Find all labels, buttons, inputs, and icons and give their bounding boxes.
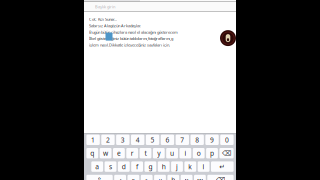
button[interactable]: x bbox=[127, 175, 139, 180]
button[interactable]: f bbox=[131, 161, 143, 172]
staticText: ⌫ bbox=[216, 176, 225, 180]
button[interactable]: b bbox=[167, 175, 179, 180]
button[interactable]: e bbox=[113, 148, 125, 158]
staticText: p bbox=[210, 149, 214, 158]
button[interactable]: c bbox=[141, 175, 153, 180]
button[interactable]: v bbox=[154, 175, 166, 180]
button[interactable]: 6 bbox=[161, 135, 174, 145]
staticText: 1 bbox=[91, 135, 95, 144]
staticText: m bbox=[197, 176, 203, 180]
staticText: İlkel gösterdiğiniz bütün tablolarını,fo… bbox=[89, 36, 173, 41]
staticText: e bbox=[117, 149, 121, 158]
staticText: v bbox=[158, 176, 161, 180]
button[interactable]: r bbox=[126, 148, 138, 158]
button[interactable]: a bbox=[91, 161, 103, 172]
button[interactable]: ⌫ bbox=[207, 175, 234, 180]
staticText: h bbox=[162, 162, 166, 171]
button[interactable]: o bbox=[193, 148, 205, 158]
button[interactable]: l bbox=[198, 161, 209, 172]
staticText: ⌫ bbox=[222, 149, 231, 157]
button[interactable]: q bbox=[86, 148, 98, 158]
staticText: 4 bbox=[136, 135, 140, 144]
button[interactable]: d bbox=[118, 161, 130, 172]
staticText: Bugün bütün cihazlara nasıl el alacağını… bbox=[89, 29, 178, 35]
button[interactable]: 4 bbox=[131, 135, 144, 145]
staticText: 6 bbox=[165, 135, 169, 144]
staticText: işlem nasıl,Dikkatle izleyeceğiniz sayfa… bbox=[89, 42, 170, 47]
staticText: q bbox=[90, 149, 94, 158]
button[interactable]: ↵ bbox=[211, 161, 234, 172]
staticText: n bbox=[185, 176, 189, 180]
button[interactable]: u bbox=[166, 148, 178, 158]
button[interactable]: w bbox=[100, 148, 111, 158]
button[interactable]: n bbox=[181, 175, 192, 180]
button[interactable]: t bbox=[140, 148, 151, 158]
button[interactable]: 1 bbox=[86, 135, 100, 145]
staticText: o bbox=[197, 149, 201, 158]
staticText: w bbox=[103, 149, 108, 158]
staticText: d bbox=[122, 162, 126, 171]
staticText: ↵ bbox=[219, 163, 225, 170]
button[interactable]: p bbox=[206, 148, 218, 158]
button[interactable]: 8 bbox=[190, 135, 204, 145]
button[interactable]: g bbox=[144, 161, 156, 172]
staticText: s bbox=[109, 162, 112, 171]
staticText: b bbox=[171, 176, 175, 180]
staticText: 5 bbox=[151, 135, 155, 144]
button[interactable]: 7 bbox=[176, 135, 189, 145]
staticText: 3 bbox=[121, 135, 125, 144]
staticText: t bbox=[144, 149, 146, 158]
staticText: CoC Kızı Sunar... bbox=[89, 17, 117, 22]
button[interactable]: j bbox=[171, 161, 183, 172]
staticText: Sabırsız Alagözün Arkadaşlar. bbox=[89, 23, 141, 28]
button[interactable]: 5 bbox=[146, 135, 159, 145]
button[interactable]: 3 bbox=[116, 135, 129, 145]
button[interactable]: ⌫ bbox=[219, 148, 234, 158]
staticText: 9 bbox=[210, 135, 214, 144]
staticText: 0 bbox=[225, 135, 229, 144]
button[interactable]: m bbox=[194, 175, 206, 180]
staticText: c bbox=[145, 176, 148, 180]
staticText: k bbox=[188, 162, 192, 171]
button[interactable]: ⇧ bbox=[86, 175, 113, 180]
button[interactable]: 2 bbox=[101, 135, 115, 145]
button[interactable]: y bbox=[153, 148, 165, 158]
staticText: u bbox=[170, 149, 174, 158]
button[interactable]: 0 bbox=[220, 135, 234, 145]
button[interactable]: s bbox=[105, 161, 116, 172]
staticText: j bbox=[176, 162, 178, 171]
button[interactable]: i bbox=[179, 148, 191, 158]
staticText: y bbox=[157, 149, 160, 158]
staticText: a bbox=[95, 162, 99, 171]
staticText: 8 bbox=[195, 135, 199, 144]
staticText: f bbox=[136, 162, 138, 171]
staticText: Başlık girin bbox=[95, 4, 115, 9]
button[interactable]: 9 bbox=[205, 135, 219, 145]
staticText: g bbox=[148, 162, 152, 171]
staticText: z bbox=[119, 176, 122, 180]
staticText: i bbox=[184, 149, 186, 158]
button[interactable]: h bbox=[158, 161, 170, 172]
staticText: r bbox=[131, 149, 134, 158]
staticText: l bbox=[203, 162, 205, 171]
button[interactable]: z bbox=[114, 175, 126, 180]
staticText: x bbox=[131, 176, 135, 180]
staticText: 7 bbox=[180, 135, 184, 144]
button[interactable]: k bbox=[184, 161, 196, 172]
staticText: ⇧ bbox=[96, 176, 102, 180]
staticText: 2 bbox=[106, 135, 110, 144]
